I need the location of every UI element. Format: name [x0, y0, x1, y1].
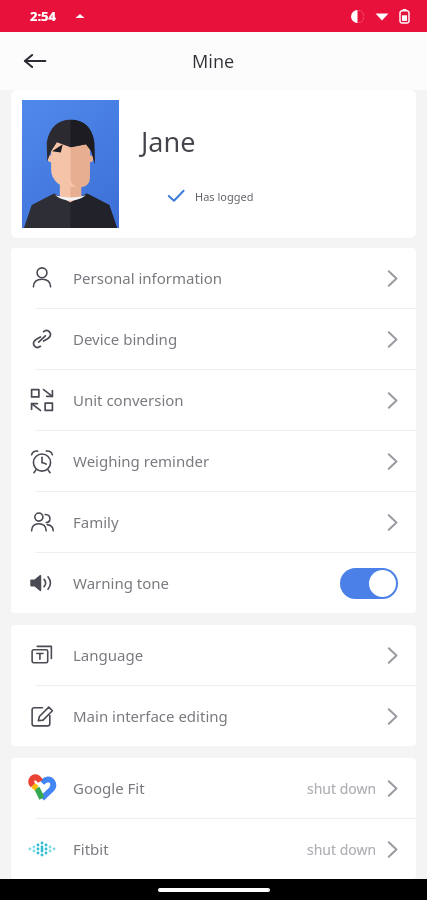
staticText: Personal information: [73, 268, 223, 288]
staticText: Google Fit: [73, 778, 145, 798]
button[interactable]: Unit conversion: [11, 370, 416, 430]
staticText: Jane: [141, 123, 196, 160]
staticText: Main interface editing: [73, 706, 228, 726]
staticText: 2:54: [30, 7, 56, 25]
staticText: Language: [73, 645, 144, 665]
button[interactable]: Device binding: [11, 309, 416, 369]
staticText: shut down: [307, 840, 377, 859]
button[interactable]: Warning tone: [11, 553, 416, 613]
staticText: Warning tone: [73, 573, 170, 593]
staticText: Device binding: [73, 329, 178, 349]
button[interactable]: Family: [11, 492, 416, 552]
button[interactable]: Personal information: [11, 248, 416, 308]
button[interactable]: Google Fit: [11, 758, 416, 818]
staticText: Fitbit: [73, 839, 109, 859]
button[interactable]: Fitbit: [11, 819, 416, 879]
button[interactable]: Back: [14, 40, 56, 82]
staticText: Unit conversion: [73, 390, 184, 410]
staticText: Weighing reminder: [73, 451, 210, 471]
staticText: shut down: [307, 779, 377, 798]
button[interactable]: Language: [11, 625, 416, 685]
staticText: Family: [73, 512, 119, 532]
button[interactable]: Main interface editing: [11, 686, 416, 746]
button[interactable]: Jane: [11, 90, 416, 238]
button[interactable]: Warning tone toggle, on: [340, 568, 398, 599]
button[interactable]: Weighing reminder: [11, 431, 416, 491]
staticText: Has logged: [195, 189, 254, 204]
staticText: Mine: [192, 49, 235, 74]
